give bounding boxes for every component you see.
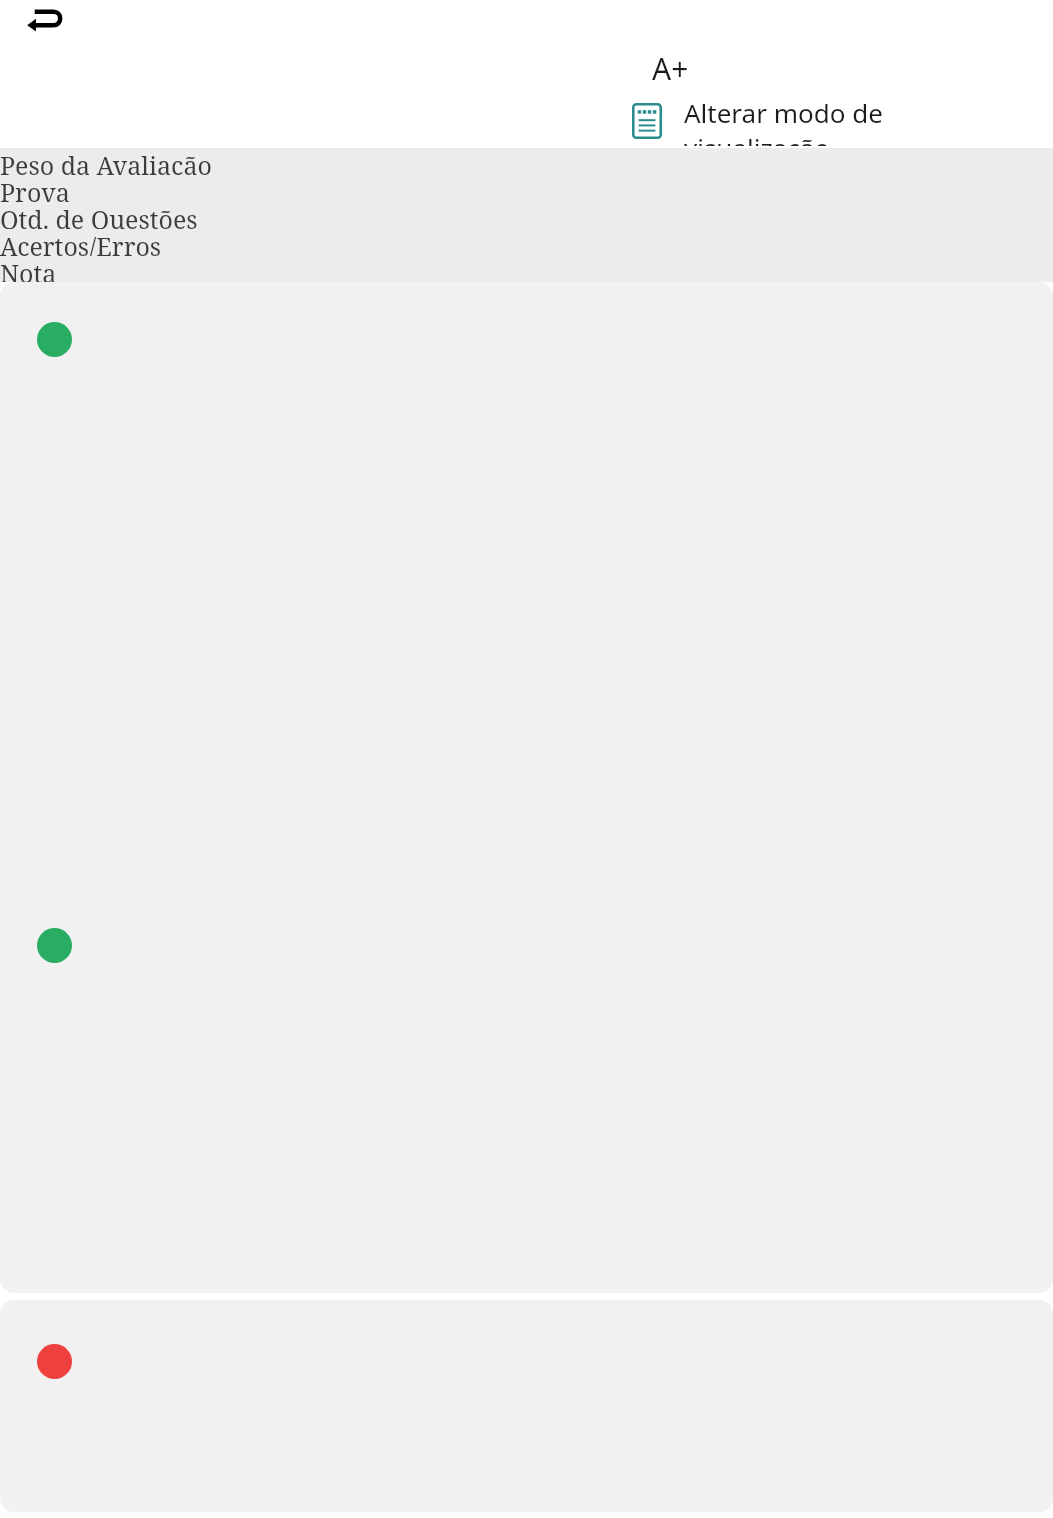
staticText: A+ xyxy=(652,48,689,89)
staticText: Acertos/Erros xyxy=(0,229,162,256)
staticText: Peso da Avaliação xyxy=(0,148,212,175)
button[interactable] xyxy=(0,1300,1053,1512)
staticText: Alterar modo de visualização xyxy=(684,95,980,146)
staticText: Prova xyxy=(0,175,70,202)
button[interactable]: A+ xyxy=(620,43,720,93)
button[interactable]: Alterar modo de visualização xyxy=(610,95,980,146)
button[interactable]: Voltar xyxy=(18,0,76,44)
staticText: Nota xyxy=(0,256,57,282)
button[interactable] xyxy=(0,282,1053,1293)
staticText: Qtd. de Questões xyxy=(0,202,198,229)
